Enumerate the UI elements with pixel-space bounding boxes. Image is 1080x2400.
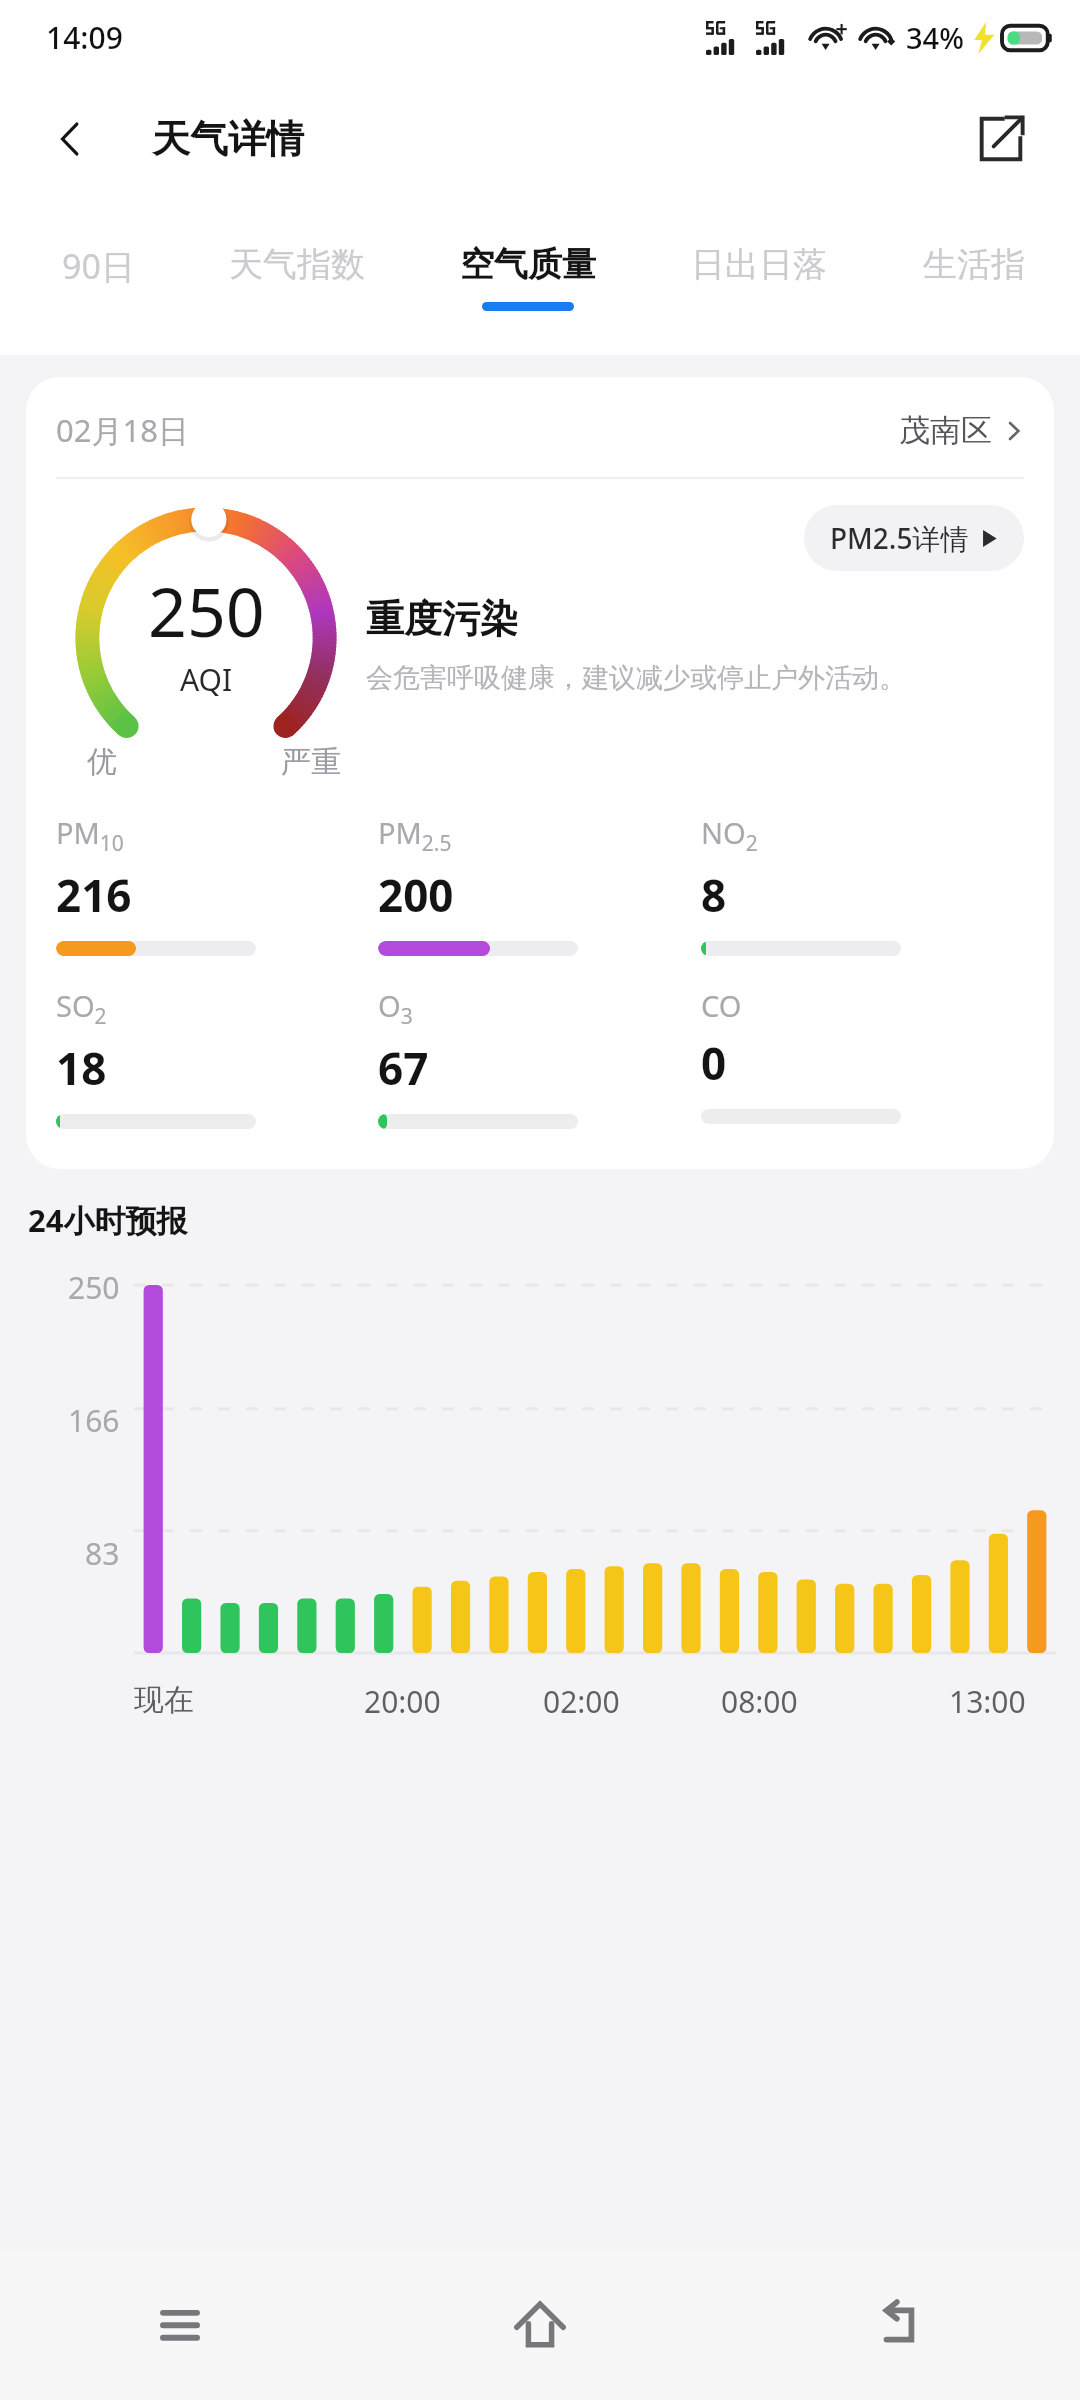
- staticText: PM10: [56, 813, 124, 857]
- staticText: PM2.5详情: [830, 519, 969, 557]
- staticText: 优: [87, 743, 117, 781]
- staticText: 天气指数: [229, 243, 365, 286]
- button[interactable]: 生活指: [874, 203, 1074, 355]
- staticText: 日出日落: [691, 243, 827, 286]
- staticText: CO: [701, 986, 742, 1025]
- button[interactable]: 空气质量: [412, 203, 644, 355]
- staticText: 严重: [281, 743, 341, 781]
- staticText: 8: [701, 865, 727, 925]
- staticText: 250: [68, 1267, 120, 1308]
- staticText: 02月18日: [56, 409, 189, 451]
- staticText: AQI: [180, 659, 233, 700]
- staticText: SO2: [56, 986, 107, 1030]
- staticText: 茂南区: [899, 411, 992, 450]
- staticText: 90日: [62, 243, 135, 289]
- button[interactable]: 菜单: [0, 2250, 360, 2400]
- button[interactable]: 返回: [38, 107, 102, 171]
- button[interactable]: 茂南区: [899, 411, 1024, 450]
- staticText: 08:00: [721, 1681, 798, 1722]
- button[interactable]: 日出日落: [644, 203, 874, 355]
- staticText: 18: [56, 1038, 107, 1098]
- staticText: 02:00: [543, 1681, 620, 1722]
- staticText: 20:00: [364, 1681, 441, 1722]
- staticText: 24小时预报: [28, 1199, 188, 1241]
- staticText: 200: [378, 865, 454, 925]
- staticText: 67: [378, 1038, 429, 1098]
- staticText: 空气质量: [460, 243, 596, 286]
- staticText: 0: [701, 1033, 727, 1093]
- button[interactable]: 分享: [966, 104, 1036, 174]
- button[interactable]: PM2.5详情: [804, 505, 1024, 571]
- staticText: 13:00: [949, 1681, 1026, 1722]
- staticText: 83: [85, 1533, 120, 1574]
- staticText: NO2: [701, 813, 758, 857]
- button[interactable]: 返回: [720, 2250, 1080, 2400]
- staticText: O3: [378, 986, 413, 1030]
- staticText: 14:09: [46, 17, 123, 58]
- staticText: 会危害呼吸健康，建议减少或停止户外活动。: [366, 661, 906, 695]
- staticText: 天气详情: [152, 115, 304, 163]
- staticText: PM2.5: [378, 813, 452, 857]
- staticText: 250: [148, 564, 265, 657]
- button[interactable]: 天气指数: [182, 203, 412, 355]
- button[interactable]: 90日: [14, 203, 182, 355]
- button[interactable]: 主页: [360, 2250, 720, 2400]
- staticText: 216: [56, 865, 132, 925]
- staticText: 现在: [134, 1681, 194, 1719]
- staticText: 生活指: [923, 243, 1025, 286]
- staticText: 34%: [906, 18, 964, 57]
- staticText: 重度污染: [366, 595, 518, 643]
- staticText: 166: [68, 1400, 120, 1441]
